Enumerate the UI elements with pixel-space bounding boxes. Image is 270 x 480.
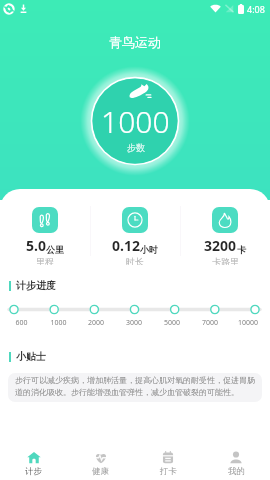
- staticText: 10000: [229, 318, 267, 328]
- button[interactable]: 3200: [180, 207, 270, 265]
- staticText: 小时: [140, 244, 158, 255]
- staticText: 4:08: [247, 3, 265, 15]
- staticText: 卡: [237, 244, 246, 255]
- button[interactable]: 计步: [0, 444, 67, 480]
- staticText: 1000: [40, 318, 77, 328]
- staticText: 0.12: [112, 236, 140, 255]
- staticText: 计步进度: [16, 279, 56, 292]
- button[interactable]: 5.0: [0, 207, 90, 265]
- staticText: 步数: [127, 142, 145, 153]
- button[interactable]: 0.12: [90, 207, 180, 265]
- staticText: 7000: [191, 318, 229, 328]
- button[interactable]: 我的: [202, 444, 270, 480]
- staticText: 600: [3, 318, 40, 328]
- staticText: 1000: [101, 101, 170, 142]
- staticText: 里程: [36, 256, 54, 265]
- staticText: 5000: [153, 318, 191, 328]
- staticText: 青鸟运动: [0, 34, 270, 50]
- staticText: 2000: [77, 318, 115, 328]
- staticText: 健康: [92, 466, 109, 477]
- staticText: 时长: [126, 256, 144, 265]
- staticText: 3200: [204, 236, 237, 255]
- staticText: 3000: [115, 318, 153, 328]
- staticText: 步行可以减少疾病，增加肺活量，提高心肌对氧的耐受性，促进胃肠道的消化吸收。步行能…: [15, 375, 255, 398]
- button[interactable]: 打卡: [134, 444, 202, 480]
- staticText: 我的: [228, 466, 245, 477]
- staticText: 打卡: [160, 466, 177, 477]
- button[interactable]: 健康: [67, 444, 134, 480]
- staticText: 卡路里: [212, 256, 239, 265]
- staticText: 计步: [25, 466, 42, 477]
- staticText: 小贴士: [16, 350, 46, 363]
- staticText: 5.0: [26, 236, 46, 255]
- staticText: 公里: [46, 244, 64, 255]
